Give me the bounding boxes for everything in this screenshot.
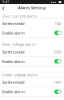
staticText: Enable alarm bbox=[2, 30, 25, 36]
staticText: ••• bbox=[50, 0, 56, 5]
button[interactable]: Set threshold bbox=[0, 47, 64, 56]
staticText: 180V bbox=[53, 80, 61, 85]
staticText: 10A bbox=[54, 21, 61, 26]
staticText: Over voltage alarm bbox=[2, 42, 36, 47]
staticText: Over current alarm bbox=[2, 13, 37, 18]
button[interactable]: Enable alarm bbox=[0, 57, 64, 66]
staticText: Enable alarm bbox=[2, 59, 25, 64]
staticText: Enable alarm bbox=[2, 89, 25, 94]
button[interactable]: Enable alarm bbox=[0, 28, 64, 37]
staticText: Set threshold bbox=[2, 49, 24, 54]
staticText: 9:41 bbox=[2, 0, 9, 4]
staticText: Alarm Setting bbox=[18, 5, 46, 10]
button[interactable]: Set threshold bbox=[0, 19, 64, 28]
staticText: ‹ bbox=[2, 2, 4, 13]
button[interactable]: Enable alarm bbox=[0, 87, 64, 96]
staticText: 250V bbox=[53, 49, 61, 54]
staticText bbox=[56, 0, 58, 4]
button[interactable]: Set threshold bbox=[0, 78, 64, 87]
staticText: Set threshold bbox=[2, 80, 24, 85]
button[interactable]: Back bbox=[0, 4, 6, 11]
staticText: Set threshold bbox=[2, 21, 24, 26]
staticText: Under voltage alarm bbox=[2, 72, 38, 77]
